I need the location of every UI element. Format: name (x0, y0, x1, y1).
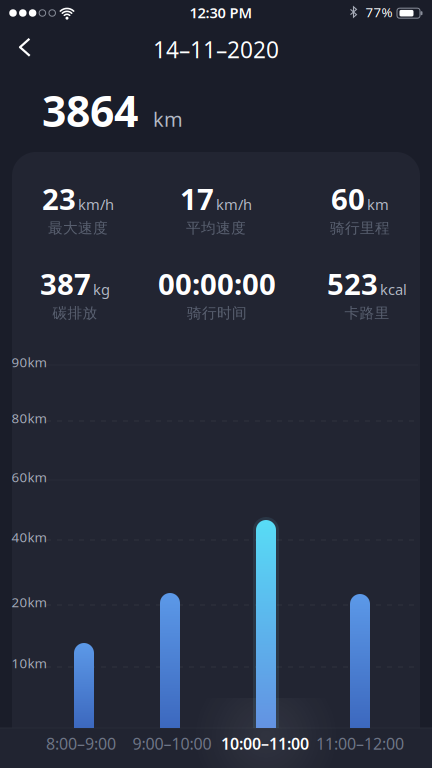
staticText: 387 (40, 264, 91, 303)
staticText: 10km (11, 654, 46, 672)
staticText: 90km (11, 353, 46, 371)
button[interactable]: 9:00–10:00 (132, 733, 211, 754)
staticText: 9:00–10:00 (132, 733, 211, 754)
staticText: 00:00:00 (158, 264, 276, 303)
staticText: 17 (180, 179, 214, 218)
staticText: km/h (216, 194, 252, 214)
button[interactable]: 8:00–9:00 (46, 733, 116, 754)
staticText: 11:00–12:00 (316, 733, 404, 754)
staticText: 骑行时间 (187, 304, 247, 322)
staticText: km (367, 194, 389, 214)
staticText: 523 (327, 264, 378, 303)
staticText: 14–11–2020 (153, 34, 279, 64)
staticText: 77% (365, 3, 392, 21)
staticText: 10:00–11:00 (221, 733, 309, 754)
staticText: kg (93, 279, 110, 299)
staticText: 23 (42, 179, 76, 218)
staticText: km/h (78, 194, 114, 214)
staticText: 20km (11, 593, 46, 611)
staticText: 60km (11, 468, 46, 486)
staticText: 碳排放 (52, 304, 97, 322)
button[interactable]: 10:00–11:00 (221, 733, 309, 754)
staticText: 12:30 PM (189, 3, 252, 22)
staticText: 8:00–9:00 (46, 733, 116, 754)
button[interactable]: 11:00–12:00 (316, 733, 404, 754)
staticText: 平均速度 (186, 219, 246, 237)
staticText: 卡路里 (344, 304, 389, 322)
staticText: 60 (331, 179, 365, 218)
staticText: 40km (11, 528, 46, 546)
staticText: km (153, 106, 183, 132)
staticText: 骑行里程 (330, 219, 390, 237)
staticText: 最大速度 (48, 219, 108, 237)
button[interactable]: Back (19, 38, 31, 56)
staticText: 3864 (42, 82, 138, 139)
staticText: 80km (11, 409, 46, 427)
staticText: kcal (380, 279, 407, 299)
